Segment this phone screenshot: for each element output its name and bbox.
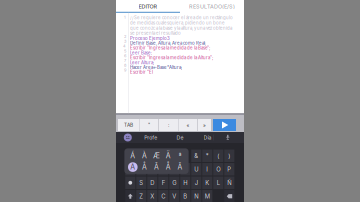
button[interactable]: ( xyxy=(213,150,223,162)
button[interactable]: S xyxy=(136,177,146,189)
button[interactable]: Día xyxy=(195,132,219,143)
button[interactable]: U xyxy=(191,163,201,175)
button[interactable]: Delete xyxy=(224,190,234,202)
staticText: : xyxy=(168,122,169,128)
staticText: Escribir "Ingresa la medida de la Base"; xyxy=(130,45,210,51)
button[interactable]: » xyxy=(198,119,211,131)
button[interactable]: N xyxy=(191,190,201,202)
staticText: À xyxy=(142,151,147,160)
button[interactable]: " xyxy=(139,119,158,131)
staticText: K xyxy=(205,179,209,186)
staticText: Ä xyxy=(166,151,171,160)
staticText: 2 xyxy=(124,34,126,39)
button[interactable]: Shift xyxy=(125,190,135,202)
button[interactable]: P xyxy=(224,163,234,175)
staticText: " xyxy=(148,122,150,128)
button[interactable]: D xyxy=(147,177,157,189)
staticText: C xyxy=(161,193,165,200)
button[interactable]: Q xyxy=(125,163,135,175)
button[interactable]: Y xyxy=(180,163,190,175)
staticText: Z xyxy=(139,193,143,200)
staticText: 4 xyxy=(123,44,126,48)
button[interactable]: L xyxy=(213,177,223,189)
button[interactable]: K xyxy=(202,177,212,189)
staticText: 7 xyxy=(124,58,126,63)
button[interactable]: G xyxy=(169,177,179,189)
staticText: 1 xyxy=(124,15,126,20)
staticText: ) xyxy=(228,152,230,159)
staticText: « xyxy=(186,122,189,128)
staticText: S xyxy=(139,179,143,186)
staticText: //Se requiere conocer el área de un rect… xyxy=(130,15,233,36)
staticText: * xyxy=(206,152,209,159)
button[interactable]: E xyxy=(147,163,157,175)
button[interactable]: T xyxy=(169,163,179,175)
staticText: A xyxy=(130,163,135,171)
button[interactable]: Voice input xyxy=(223,132,233,143)
staticText: Profe xyxy=(144,134,157,141)
staticText: Leer Altura; xyxy=(130,60,154,65)
staticText: ( xyxy=(217,152,219,159)
button[interactable]: O xyxy=(213,163,223,175)
button[interactable]: « xyxy=(178,119,197,131)
staticText: P xyxy=(227,166,231,173)
button[interactable]: V xyxy=(169,190,179,202)
staticText: TAB xyxy=(124,122,133,128)
button[interactable]: Ñ xyxy=(224,177,234,189)
button[interactable]: Profe xyxy=(139,132,163,143)
button[interactable]: De xyxy=(168,132,192,143)
button[interactable]: C xyxy=(158,190,168,202)
staticText: M xyxy=(205,193,210,200)
button[interactable]: H xyxy=(180,177,190,189)
staticText: Leer Base; xyxy=(130,50,152,55)
button[interactable]: R xyxy=(158,163,168,175)
staticText: Día xyxy=(203,134,211,141)
staticText: Escribir "El xyxy=(130,70,153,75)
staticText: 8 xyxy=(124,63,126,68)
staticText: 6 xyxy=(124,53,126,58)
staticText: W xyxy=(138,166,144,173)
button[interactable]: B xyxy=(180,190,190,202)
staticText: Escribir "Ingresa la medida de la Altura… xyxy=(130,55,213,60)
staticText: Æ xyxy=(153,151,160,160)
button[interactable]: EDITOR xyxy=(116,0,180,13)
button[interactable]: J xyxy=(191,177,201,189)
staticText: U xyxy=(194,166,198,173)
staticText: ª xyxy=(178,151,181,160)
button[interactable]: M xyxy=(202,190,212,202)
staticText: I xyxy=(206,166,208,173)
button[interactable]: : xyxy=(159,119,178,131)
button[interactable]: Run xyxy=(213,119,236,131)
button[interactable]: W xyxy=(136,163,146,175)
button[interactable]: RESULTADO(E/S) xyxy=(180,0,244,13)
staticText: Â xyxy=(142,163,147,171)
staticText: Ñ xyxy=(227,179,231,186)
staticText: 5 xyxy=(124,48,126,53)
staticText: H xyxy=(183,179,187,186)
staticText: Á xyxy=(130,151,135,160)
staticText: D xyxy=(150,179,154,186)
staticText: L xyxy=(217,179,220,186)
button[interactable]: I xyxy=(202,163,212,175)
button[interactable]: F xyxy=(158,177,168,189)
button[interactable]: & xyxy=(191,150,201,162)
staticText: G xyxy=(172,179,176,186)
button[interactable]: ) xyxy=(224,150,234,162)
button[interactable]: X xyxy=(147,190,157,202)
button[interactable]: Emoji keyboard xyxy=(124,133,132,141)
button[interactable]: A xyxy=(125,177,135,189)
staticText: J xyxy=(195,179,198,186)
staticText: Q xyxy=(128,166,132,173)
button[interactable]: Z xyxy=(136,190,146,202)
staticText: N xyxy=(194,193,198,200)
staticText: 9 xyxy=(124,68,126,72)
staticText: De xyxy=(176,134,183,141)
staticText: Proceso Ejemplo3 xyxy=(130,36,170,41)
button[interactable]: * xyxy=(202,150,212,162)
staticText: Ā xyxy=(177,163,182,171)
button[interactable]: TAB xyxy=(118,119,139,131)
staticText: F xyxy=(162,179,165,186)
